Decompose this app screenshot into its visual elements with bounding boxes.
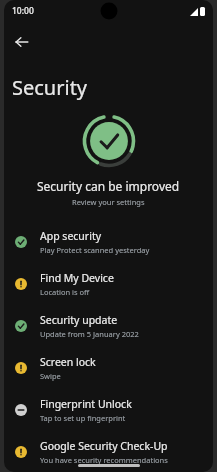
staticText: Swipe — [40, 371, 61, 381]
button[interactable]: Security update — [4, 305, 213, 347]
button[interactable]: Google Security Check-Up — [4, 431, 213, 472]
staticText: Security update — [40, 313, 118, 327]
staticText: Location is off — [40, 287, 90, 297]
button[interactable]: Screen lock — [4, 347, 213, 389]
staticText: You have security recommendations — [40, 455, 168, 465]
staticText: Security — [12, 74, 88, 101]
button[interactable]: App security — [4, 221, 213, 263]
staticText: Play Protect scanned yesterday — [40, 245, 150, 255]
staticText: App security — [40, 229, 102, 243]
button[interactable]: Fingerprint Unlock — [4, 389, 213, 431]
staticText: Fingerprint Unlock — [40, 397, 132, 411]
staticText: Screen lock — [40, 355, 96, 369]
button[interactable]: Back — [8, 28, 36, 56]
staticText: Security can be improved — [37, 178, 180, 194]
staticText: Update from 5 January 2022 — [40, 329, 139, 339]
staticText: Google Security Check-Up — [40, 439, 168, 453]
staticText: Review your settings — [72, 197, 145, 207]
staticText: Tap to set up fingerprint — [40, 413, 126, 423]
button[interactable]: Find My Device — [4, 263, 213, 305]
staticText: Find My Device — [40, 271, 114, 285]
staticText: 10:00 — [12, 5, 34, 17]
